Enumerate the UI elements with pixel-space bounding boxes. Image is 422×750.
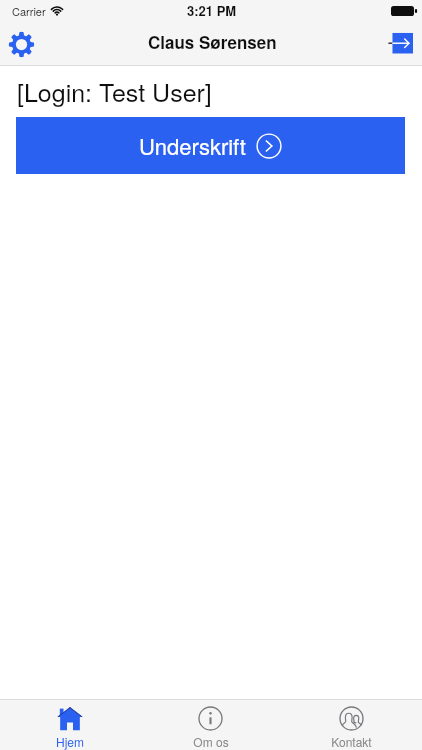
button[interactable]: Underskrift <box>16 117 405 174</box>
button[interactable]: Log in <box>387 30 415 58</box>
staticText: Underskrift <box>139 130 246 162</box>
staticText: Carrier <box>12 3 46 19</box>
staticText: [Login: Test User] <box>17 73 212 109</box>
button[interactable]: Hjem <box>0 700 140 750</box>
button[interactable]: Kontakt <box>281 700 422 750</box>
button[interactable]: Om os <box>140 700 281 750</box>
staticText: Claus Sørensen <box>148 30 277 54</box>
staticText: Hjem <box>56 733 84 750</box>
staticText: Om os <box>193 733 229 750</box>
staticText: 3:21 PM <box>187 1 237 20</box>
button[interactable]: Settings <box>5 28 37 60</box>
staticText: Kontakt <box>331 733 372 750</box>
